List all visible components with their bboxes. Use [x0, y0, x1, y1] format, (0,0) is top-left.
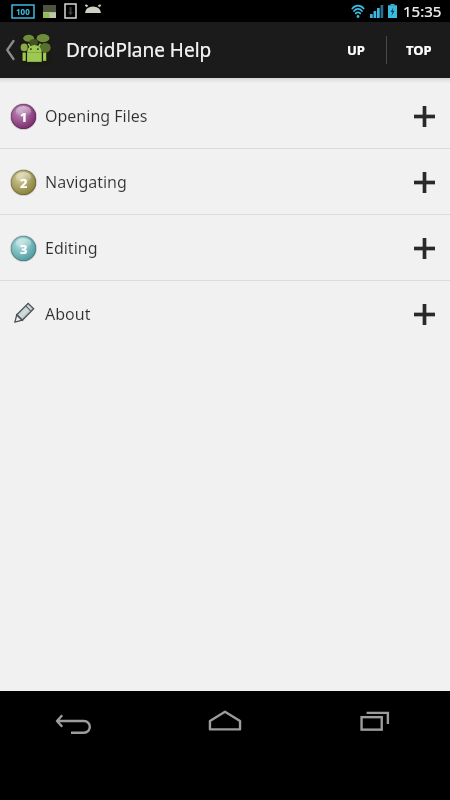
button[interactable]: TOP	[387, 22, 450, 78]
button[interactable]: Home	[150, 691, 300, 751]
button[interactable]: About	[0, 281, 450, 346]
button[interactable]: Navigate up	[0, 26, 56, 74]
button[interactable]: Recent apps	[300, 691, 450, 751]
staticText: Opening Files	[45, 105, 148, 127]
staticText: 2	[20, 174, 28, 192]
staticText: 1	[20, 108, 28, 126]
staticText: TOP	[406, 41, 432, 59]
button[interactable]: Back	[0, 691, 150, 751]
button[interactable]: Expand About	[406, 296, 442, 332]
staticText: DroidPlane Help	[66, 37, 212, 63]
button[interactable]: 3	[0, 215, 450, 280]
button[interactable]: Expand Navigating	[406, 164, 442, 200]
staticText: Editing	[45, 237, 98, 259]
staticText: 3	[20, 240, 28, 258]
button[interactable]: UP	[326, 22, 386, 78]
button[interactable]: 2	[0, 149, 450, 214]
button[interactable]: 1	[0, 83, 450, 148]
button[interactable]: Expand Opening Files	[406, 98, 442, 134]
staticText: 15:35	[403, 1, 442, 21]
button[interactable]: Expand Editing	[406, 230, 442, 266]
staticText: UP	[347, 41, 365, 59]
staticText: 100	[16, 6, 30, 17]
staticText: Navigating	[45, 171, 127, 193]
staticText: About	[45, 303, 91, 325]
